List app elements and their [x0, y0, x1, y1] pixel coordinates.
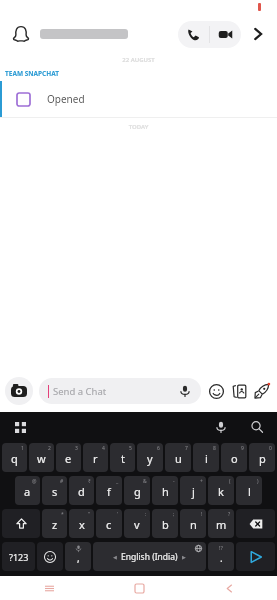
staticText: " [88, 511, 91, 518]
staticText: q [11, 451, 18, 466]
button[interactable]: - [152, 476, 178, 505]
staticText: 6 [157, 445, 160, 452]
staticText: s [52, 484, 58, 499]
button[interactable]: ◀ [93, 542, 206, 571]
button[interactable]: Back [207, 576, 251, 600]
button[interactable]: Recents [27, 576, 71, 600]
button[interactable]: Voice input [211, 417, 231, 437]
button[interactable]: ; [152, 509, 178, 538]
button[interactable]: 1 [2, 443, 27, 472]
staticText: w [37, 451, 46, 466]
staticText: Send a Chat [53, 385, 107, 398]
staticText: m [216, 517, 227, 532]
button[interactable]: 8 [193, 443, 219, 472]
button[interactable]: Send [236, 542, 275, 571]
button[interactable]: & [124, 476, 150, 505]
button[interactable]: 9 [221, 443, 247, 472]
button[interactable]: 3 [56, 443, 81, 472]
staticText: 8 [213, 445, 216, 452]
button[interactable]: ( [208, 476, 234, 505]
button[interactable]: # [42, 476, 67, 505]
button[interactable]: @ [15, 476, 40, 505]
button[interactable]: Keyboard menu [10, 417, 30, 437]
staticText: # [60, 478, 64, 485]
staticText: g [134, 484, 141, 499]
staticText: d [78, 484, 85, 499]
button[interactable]: Profile [8, 21, 34, 47]
button[interactable]: + [180, 476, 206, 505]
button[interactable]: Call [178, 21, 209, 48]
button[interactable]: Rocket [252, 381, 272, 401]
staticText: 1 [21, 445, 24, 452]
staticText: Opened [47, 92, 85, 106]
staticText: _ [116, 478, 119, 485]
staticText: f [107, 484, 111, 499]
staticText: : [145, 511, 147, 518]
staticText: e [65, 451, 72, 466]
staticText: @ [32, 478, 37, 485]
staticText: i [205, 451, 208, 466]
staticText: 5 [129, 445, 132, 452]
button[interactable]: 7 [165, 443, 191, 472]
button[interactable]: 0 [249, 443, 275, 472]
button[interactable]: 2 [29, 443, 54, 472]
staticText: & [143, 478, 147, 485]
staticText: p [259, 451, 266, 466]
button[interactable]: Send a Chat [39, 378, 201, 404]
staticText: ) [257, 478, 259, 485]
button[interactable]: * [42, 509, 67, 538]
staticText: . [220, 551, 223, 565]
button[interactable]: 4 [83, 443, 108, 472]
button[interactable]: ) [236, 476, 262, 505]
staticText: 7 [185, 445, 188, 452]
staticText: 22 AUGUST [0, 56, 277, 64]
button[interactable]: ? [208, 509, 234, 538]
staticText: y [147, 451, 153, 466]
button[interactable]: Stickers [206, 381, 226, 401]
button[interactable]: Voice note [178, 384, 192, 398]
staticText: 4 [102, 445, 105, 452]
staticText: j [192, 484, 195, 499]
staticText: * [61, 511, 64, 518]
staticText: c [106, 517, 112, 532]
button[interactable]: !? [208, 542, 234, 571]
staticText: n [190, 517, 197, 532]
staticText: ▶ [182, 554, 186, 560]
staticText: 9 [241, 445, 244, 452]
button[interactable]: 5 [110, 443, 135, 472]
button[interactable]: Search [247, 417, 267, 437]
staticText: v [134, 517, 140, 532]
staticText: k [218, 484, 224, 499]
staticText: !? [219, 544, 223, 551]
button[interactable]: , [65, 542, 91, 571]
button[interactable]: 6 [137, 443, 163, 472]
button[interactable]: Home [117, 576, 161, 600]
button[interactable]: : [124, 509, 150, 538]
button[interactable]: Shift [2, 509, 40, 538]
staticText: 0 [269, 445, 272, 452]
button[interactable]: " [69, 509, 94, 538]
button[interactable]: Backspace [236, 509, 275, 538]
staticText: 2 [48, 445, 51, 452]
staticText: h [162, 484, 169, 499]
staticText: x [79, 517, 85, 532]
staticText: u [175, 451, 182, 466]
button[interactable]: Cameos [229, 381, 249, 401]
button[interactable]: ?123 [2, 542, 35, 571]
button[interactable]: ₹ [69, 476, 94, 505]
button[interactable]: Video call [210, 21, 241, 48]
button[interactable]: ! [180, 509, 206, 538]
staticText: 3 [75, 445, 78, 452]
button[interactable]: Camera [5, 377, 33, 405]
button[interactable]: ' [96, 509, 122, 538]
staticText: r [93, 451, 98, 466]
staticText: a [24, 484, 31, 499]
button[interactable]: _ [96, 476, 122, 505]
staticText: o [231, 451, 238, 466]
staticText: ? [228, 511, 231, 518]
button[interactable]: Opened [0, 81, 277, 117]
staticText: , [77, 551, 80, 565]
staticText: ( [229, 478, 231, 485]
button[interactable]: Emoji [37, 542, 63, 571]
button[interactable]: Open camera [245, 21, 271, 47]
